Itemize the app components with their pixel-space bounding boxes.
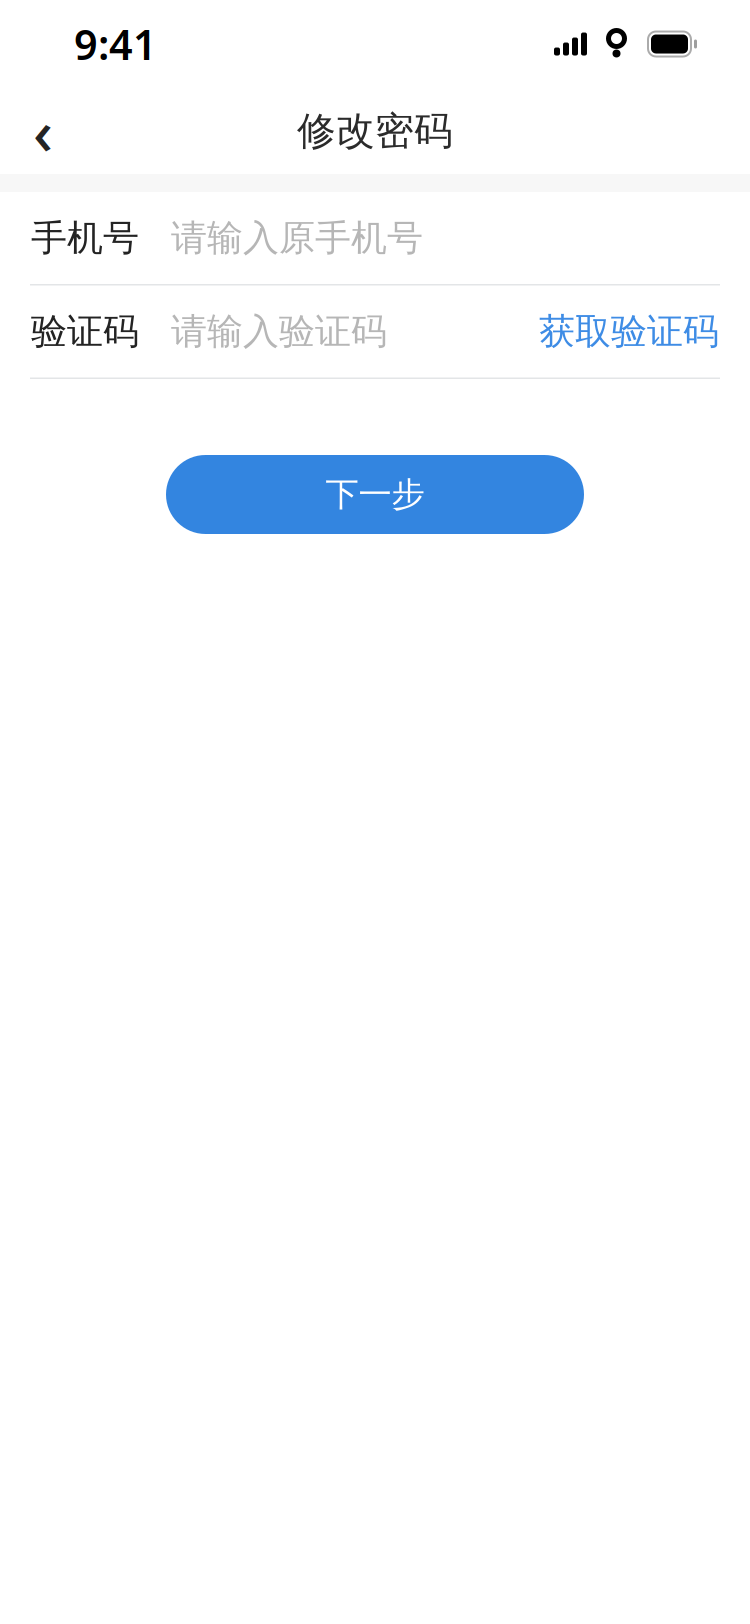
staticText: 请输入验证码 [171,309,387,354]
staticText: 修改密码 [297,107,453,155]
button[interactable]: 下一步 [166,455,584,534]
staticText: 手机号 [31,216,139,260]
staticText: 获取验证码 [539,309,719,354]
staticText: 下一步 [325,474,424,515]
staticText: 验证码 [31,309,139,354]
staticText: ‹ [33,90,53,172]
button[interactable]: 返回 [0,88,86,174]
button[interactable]: 获取验证码 [539,309,719,354]
staticText: 请输入原手机号 [171,216,423,260]
staticText: 9:41 [74,17,157,71]
